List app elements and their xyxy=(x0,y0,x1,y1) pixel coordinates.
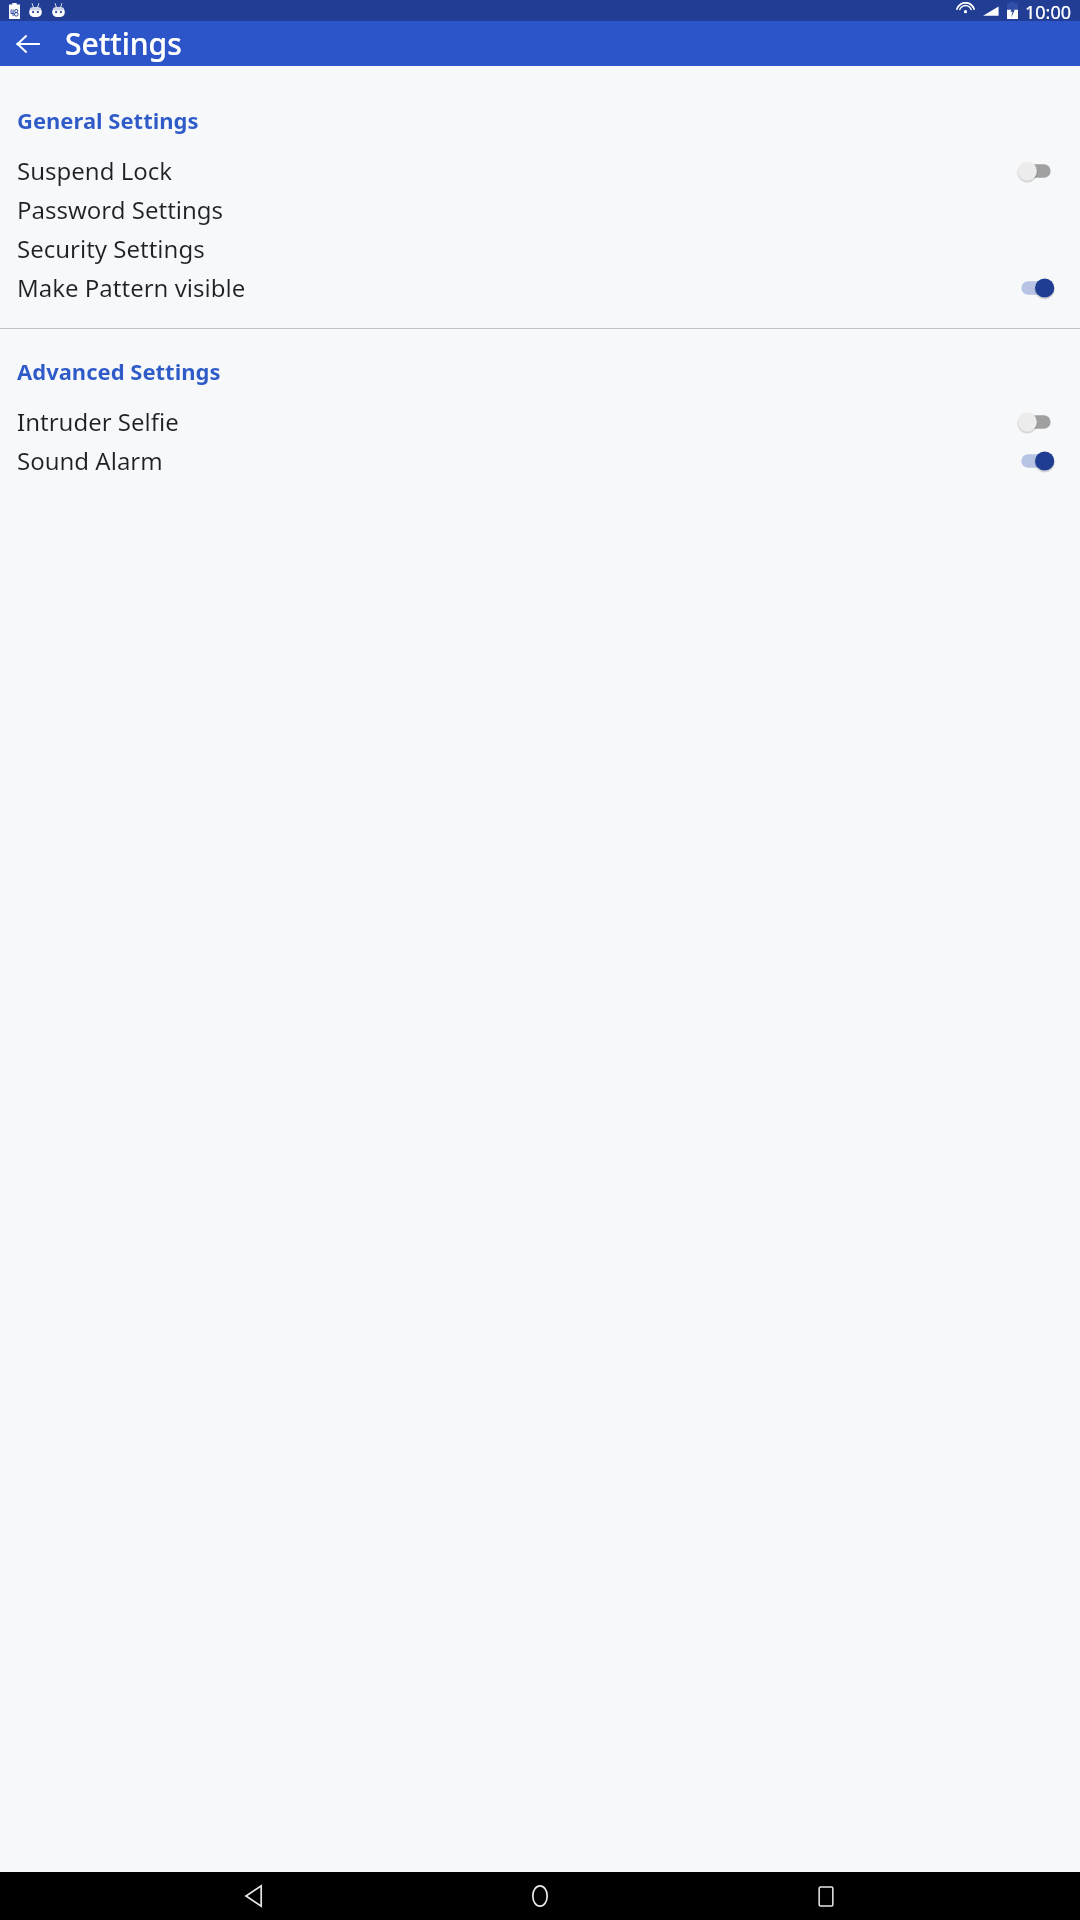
button[interactable]: Back xyxy=(8,24,48,64)
staticText: 10:00 xyxy=(1025,0,1072,21)
staticText: Intruder Selfie xyxy=(17,405,1019,438)
button[interactable]: Sound Alarm xyxy=(0,441,1080,480)
button[interactable]: Suspend Lock xyxy=(0,151,1080,190)
button[interactable]: Toggle on xyxy=(1019,275,1053,301)
staticText: Password Settings xyxy=(17,193,1053,226)
button[interactable]: Toggle off xyxy=(1019,409,1053,435)
staticText: General Settings xyxy=(17,105,199,135)
staticText: Sound Alarm xyxy=(17,444,1019,477)
button[interactable]: Toggle off xyxy=(1019,158,1053,184)
staticText: Suspend Lock xyxy=(17,154,1019,187)
button[interactable]: Make Pattern visible xyxy=(0,268,1080,307)
button[interactable]: Recent apps xyxy=(794,1872,858,1920)
button[interactable]: Back xyxy=(222,1872,286,1920)
button[interactable]: Home xyxy=(508,1872,572,1920)
staticText: Security Settings xyxy=(17,232,1053,265)
button[interactable]: Password Settings xyxy=(0,190,1080,229)
staticText: Settings xyxy=(65,23,182,64)
button[interactable]: Toggle on xyxy=(1019,448,1053,474)
button[interactable]: Security Settings xyxy=(0,229,1080,268)
button[interactable]: Intruder Selfie xyxy=(0,402,1080,441)
staticText: Advanced Settings xyxy=(17,356,221,386)
staticText: Make Pattern visible xyxy=(17,271,1019,304)
